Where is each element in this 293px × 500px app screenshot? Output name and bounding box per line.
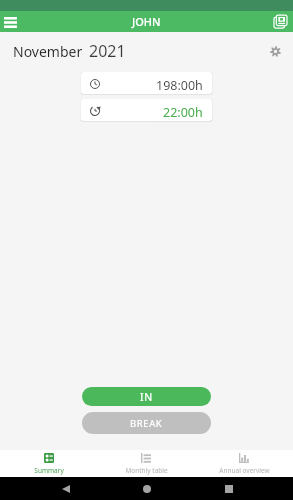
button[interactable]: Summary <box>0 450 97 477</box>
staticText: Annual overview <box>219 466 270 475</box>
button[interactable]: Menu <box>4 14 20 30</box>
button[interactable]: 22:00h <box>81 99 212 121</box>
button[interactable]: Annual overview <box>195 450 293 477</box>
button[interactable]: BREAK <box>82 412 211 434</box>
button[interactable]: IN <box>82 387 211 406</box>
staticText: BREAK <box>130 417 163 430</box>
staticText: IN <box>140 390 153 404</box>
staticText: 22:00h <box>163 104 203 121</box>
staticText: Summary <box>34 466 64 475</box>
button[interactable]: Back <box>58 481 74 497</box>
button[interactable]: Settings <box>266 42 284 60</box>
staticText: JOHN <box>132 14 161 29</box>
button[interactable]: 198:00h <box>81 72 212 94</box>
button[interactable]: Reports <box>272 14 288 30</box>
button[interactable]: Home <box>139 481 155 497</box>
staticText: 198:00h <box>156 77 203 94</box>
staticText: November <box>13 42 83 61</box>
staticText: Monthly table <box>125 466 168 475</box>
button[interactable]: Monthly table <box>97 450 195 477</box>
staticText: 2021 <box>89 40 126 62</box>
button[interactable]: Recents <box>221 481 237 497</box>
